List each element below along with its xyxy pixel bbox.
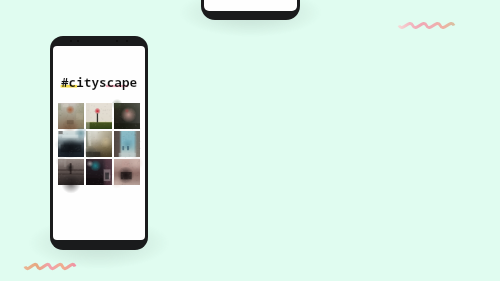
- button[interactable]: Photo 7: [58, 159, 84, 185]
- button[interactable]: Photo 6: [114, 131, 140, 157]
- button[interactable]: Photo 2: [86, 103, 112, 129]
- button[interactable]: Photo 5: [86, 131, 112, 157]
- button[interactable]: Photo 8: [86, 159, 112, 185]
- button[interactable]: #cityscape: [61, 73, 138, 90]
- button[interactable]: Photo 3: [114, 103, 140, 129]
- staticText: #cityscape: [61, 73, 138, 90]
- button[interactable]: Photo 4: [58, 131, 84, 157]
- button[interactable]: Photo 9: [114, 159, 140, 185]
- button[interactable]: Photo 1: [58, 103, 84, 129]
